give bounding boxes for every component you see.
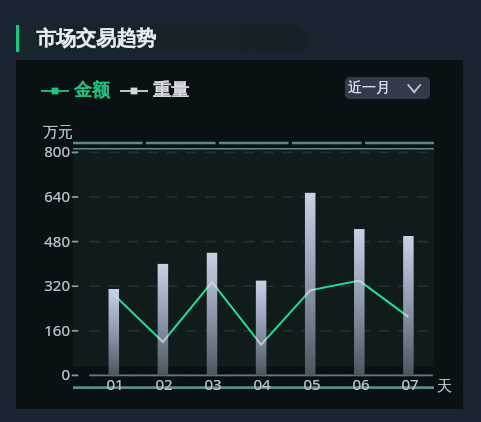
staticText: 160	[20, 320, 70, 422]
button[interactable]: 近一月	[345, 77, 430, 99]
staticText: 天	[437, 377, 452, 396]
staticText: 01	[90, 374, 140, 422]
staticText: 金额	[74, 79, 110, 102]
staticText: 0	[20, 364, 70, 422]
staticText: 640	[20, 186, 70, 422]
button[interactable]: 金额	[41, 79, 110, 102]
staticText: 重量	[153, 79, 189, 102]
staticText: 市场交易趋势	[36, 26, 156, 51]
staticText: 320	[20, 275, 70, 422]
staticText: 万元	[43, 123, 73, 142]
staticText: 06	[336, 374, 386, 422]
button[interactable]: 重量	[120, 79, 189, 102]
staticText: 07	[385, 374, 435, 422]
staticText: 03	[188, 374, 238, 422]
staticText: 近一月	[348, 79, 390, 97]
staticText: 800	[20, 141, 70, 422]
staticText: 480	[20, 231, 70, 422]
staticText: 04	[237, 374, 287, 422]
staticText: 05	[287, 374, 337, 422]
staticText: 02	[139, 374, 189, 422]
